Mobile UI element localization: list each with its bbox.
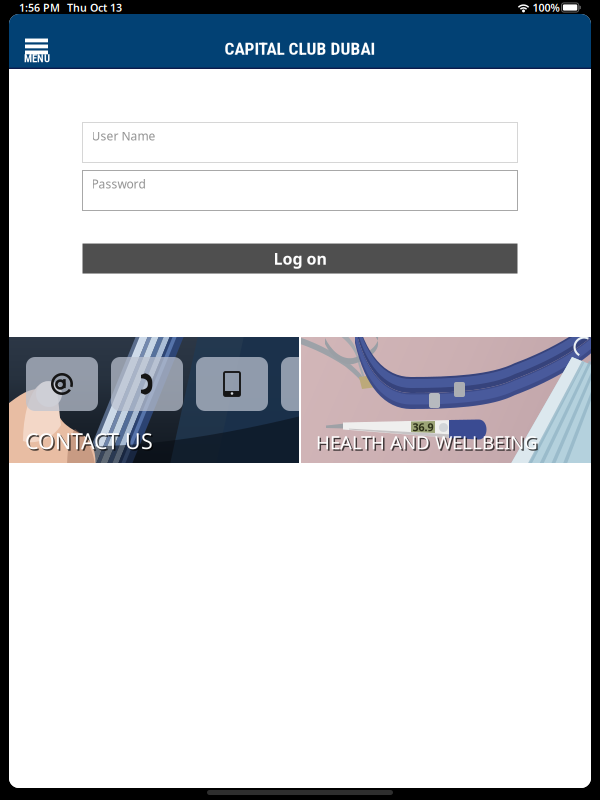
staticText: CAPITAL CLUB DUBAI xyxy=(224,39,375,59)
button[interactable]: CONTACT US xyxy=(9,337,299,463)
staticText: MENU xyxy=(24,52,50,65)
staticText: HEALTH AND WELLBEING xyxy=(317,431,539,456)
staticText: Thu Oct 13 xyxy=(67,0,122,15)
staticText: HEALTH AND WELLBEING xyxy=(316,430,538,454)
staticText: 1:56 PM xyxy=(19,0,60,15)
staticText: Log on xyxy=(273,248,326,269)
staticText: User Name xyxy=(91,128,155,144)
button[interactable]: Menu xyxy=(9,38,62,62)
button[interactable]: 36.9 xyxy=(301,337,591,463)
staticText: CONTACT US xyxy=(25,427,153,455)
button[interactable]: Log on xyxy=(82,243,517,273)
staticText: Password xyxy=(91,176,145,192)
staticText: 100% xyxy=(532,0,559,15)
staticText: CONTACT US xyxy=(26,428,154,456)
staticText: 36.9 xyxy=(412,420,433,434)
